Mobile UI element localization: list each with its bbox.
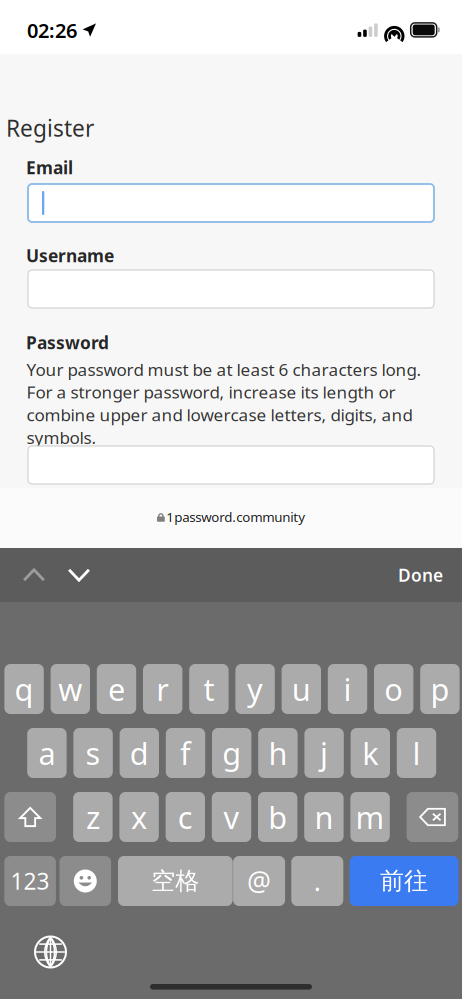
staticText: 空格	[151, 866, 199, 896]
staticText: s	[86, 733, 101, 773]
button[interactable]: 前往	[350, 856, 458, 906]
button[interactable]: y	[235, 664, 275, 714]
staticText: 1password.community	[166, 508, 305, 526]
button[interactable]: u	[282, 664, 321, 714]
button[interactable]: q	[4, 664, 44, 714]
staticText: d	[130, 733, 149, 773]
button[interactable]: 空格	[118, 856, 233, 906]
staticText: c	[178, 797, 193, 837]
button[interactable]: f	[166, 728, 205, 778]
staticText: p	[430, 669, 449, 709]
staticText: b	[268, 797, 287, 837]
button[interactable]: k	[351, 728, 390, 778]
staticText: q	[15, 669, 34, 709]
button[interactable]: Done	[353, 548, 443, 602]
staticText: x	[131, 797, 147, 837]
staticText: w	[58, 669, 82, 709]
staticText: Username	[26, 244, 114, 267]
button[interactable]: p	[420, 664, 460, 714]
button[interactable]: w	[51, 664, 90, 714]
button[interactable]: Delete	[407, 792, 458, 842]
staticText: Your password must be at least 6 charact…	[26, 358, 421, 381]
button[interactable]: b	[258, 792, 297, 842]
staticText: z	[86, 797, 100, 837]
staticText: y	[247, 669, 263, 709]
button[interactable]: @	[233, 856, 285, 906]
button[interactable]: Shift	[4, 792, 56, 842]
staticText: r	[156, 669, 169, 709]
staticText: 123	[11, 866, 50, 896]
button[interactable]: 1password.community	[147, 502, 315, 532]
staticText: o	[384, 669, 403, 709]
button[interactable]: g	[212, 728, 251, 778]
button[interactable]: z	[73, 792, 113, 842]
staticText: Register	[6, 113, 94, 143]
button[interactable]: o	[374, 664, 413, 714]
staticText: 前往	[380, 866, 428, 896]
staticText: e	[108, 669, 125, 709]
button[interactable]: Emoji	[59, 856, 111, 906]
staticText: v	[223, 797, 239, 837]
button[interactable]: i	[328, 664, 367, 714]
button[interactable]: m	[350, 792, 390, 842]
button[interactable]: n	[304, 792, 344, 842]
staticText: l	[412, 733, 420, 773]
staticText: f	[180, 733, 191, 773]
button[interactable]: 123	[4, 856, 56, 906]
button[interactable]: e	[97, 664, 136, 714]
staticText: symbols.	[26, 426, 96, 449]
staticText: a	[38, 733, 55, 773]
button[interactable]: Change keyboard	[33, 935, 67, 969]
staticText: 02:26	[27, 17, 77, 44]
staticText: For a stronger password, increase its le…	[26, 381, 395, 403]
button[interactable]: Previous field	[12, 548, 56, 602]
button[interactable]: r	[143, 664, 182, 714]
staticText: h	[268, 733, 287, 773]
button[interactable]: x	[119, 792, 159, 842]
button[interactable]: j	[304, 728, 344, 778]
button[interactable]: a	[27, 728, 67, 778]
button[interactable]: v	[212, 792, 251, 842]
staticText: u	[292, 669, 311, 709]
staticText: Email	[26, 156, 73, 179]
staticText: Done	[398, 563, 443, 586]
staticText: m	[356, 797, 385, 837]
staticText: .	[314, 863, 321, 899]
button[interactable]: l	[397, 728, 436, 778]
staticText: i	[343, 669, 351, 709]
staticText: t	[203, 669, 214, 709]
button[interactable]: h	[258, 728, 298, 778]
staticText: k	[362, 733, 378, 773]
staticText: g	[222, 733, 241, 773]
staticText: j	[320, 733, 328, 773]
button[interactable]: .	[291, 856, 343, 906]
staticText: n	[314, 797, 333, 837]
button[interactable]: d	[120, 728, 159, 778]
button[interactable]: Next field	[57, 548, 101, 602]
button[interactable]: s	[73, 728, 113, 778]
button[interactable]: t	[189, 664, 229, 714]
staticText: Password	[26, 331, 109, 354]
staticText: combine upper and lowercase letters, dig…	[26, 403, 412, 426]
button[interactable]: c	[166, 792, 205, 842]
staticText: @	[247, 863, 271, 899]
